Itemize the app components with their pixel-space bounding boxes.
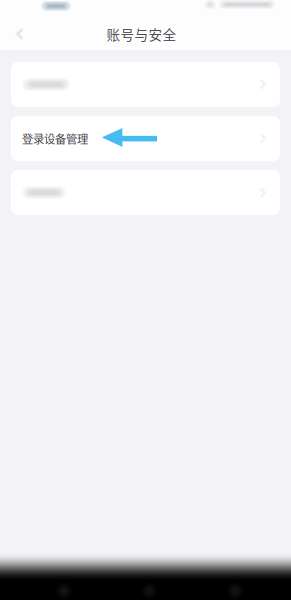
button[interactable]: Back (217, 582, 253, 600)
staticText: 登录设备管理 (22, 130, 88, 147)
button[interactable] (11, 170, 280, 215)
button[interactable]: Back (6, 20, 34, 48)
button[interactable]: Home (131, 582, 167, 600)
button[interactable]: 登录设备管理 (11, 116, 280, 161)
button[interactable]: Recent apps (46, 582, 82, 600)
staticText: 账号与安全 (106, 24, 176, 44)
button[interactable] (11, 62, 280, 107)
